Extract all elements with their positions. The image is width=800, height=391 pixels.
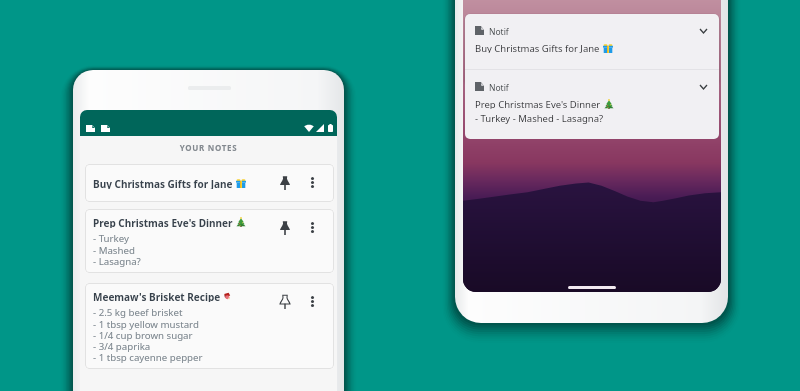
staticText: Prep Christmas Eve's Dinner xyxy=(93,216,233,228)
button[interactable]: Pin note xyxy=(264,283,290,320)
staticText: - 2.5 kg beef brisket - 1 tbsp yellow mu… xyxy=(93,306,203,364)
button[interactable]: Prep Christmas Eve's Dinner xyxy=(85,209,334,273)
staticText: - Turkey - Mashed - Lasagna? xyxy=(93,232,141,268)
button[interactable]: More options xyxy=(290,209,334,246)
button[interactable]: Expand notification xyxy=(698,82,709,91)
button[interactable]: Expand notification xyxy=(698,26,709,35)
button[interactable]: More options xyxy=(290,164,334,201)
staticText: YOUR NOTES xyxy=(80,142,337,153)
staticText: Prep Christmas Eve's Dinner xyxy=(475,98,601,109)
button[interactable]: Buy Christmas Gifts for Jane xyxy=(85,164,334,202)
staticText: Notif xyxy=(489,82,509,91)
button[interactable]: Meemaw's Brisket Recipe xyxy=(85,283,334,369)
staticText: Buy Christmas Gifts for Jane xyxy=(475,42,600,53)
button[interactable]: Pin note xyxy=(264,164,290,201)
staticText: Notif xyxy=(489,26,509,35)
staticText: - Turkey - Mashed - Lasagna? xyxy=(475,112,604,125)
button[interactable]: Pin note xyxy=(264,209,290,246)
button[interactable]: Notif xyxy=(465,14,719,69)
button[interactable]: Notif xyxy=(465,70,719,139)
staticText: Meemaw's Brisket Recipe xyxy=(93,290,221,302)
staticText: Buy Christmas Gifts for Jane xyxy=(93,177,233,189)
button[interactable]: More options xyxy=(290,283,334,320)
